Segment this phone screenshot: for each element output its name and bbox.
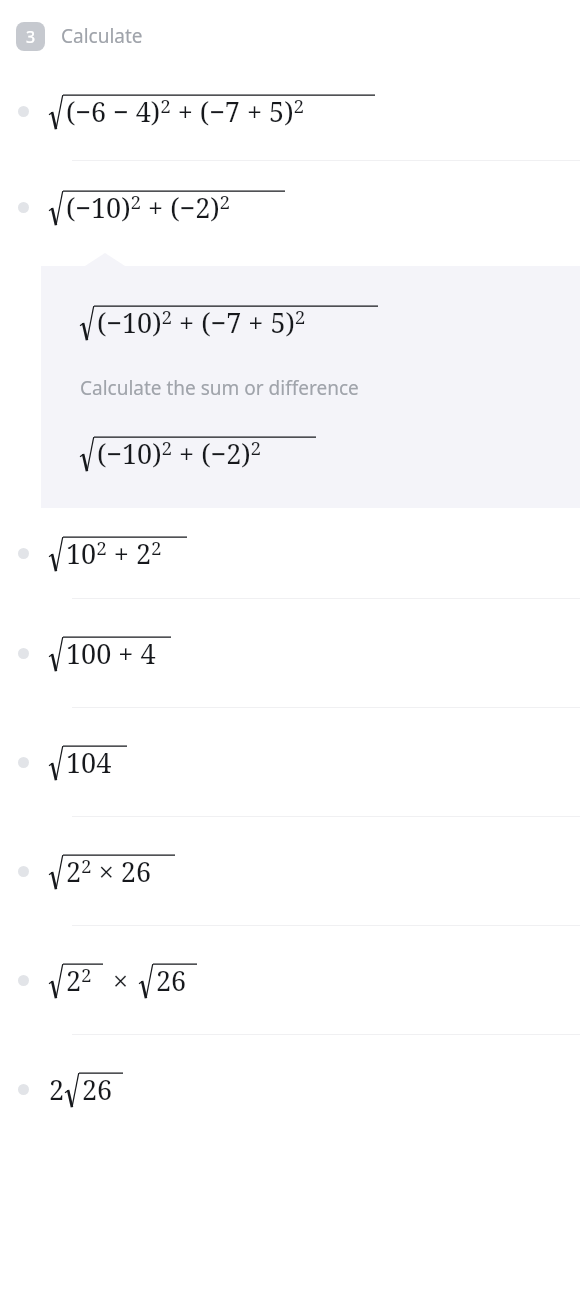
staticText: 22 <box>66 962 92 999</box>
staticText: 104 <box>66 744 112 781</box>
staticText: Calculate <box>61 23 143 49</box>
staticText: 2 <box>49 1071 65 1108</box>
button[interactable]: 3 <box>0 0 580 72</box>
staticText: Calculate the sum or difference <box>80 375 359 401</box>
button[interactable]: (−10)2 + (−2)2 <box>0 161 580 253</box>
staticText: 26 <box>82 1071 113 1108</box>
staticText: (−10)2 + (−2)2 <box>97 435 262 472</box>
button[interactable]: 22 × 26 <box>0 817 580 925</box>
staticText: 22 × 26 <box>66 853 151 890</box>
button[interactable]: 102 + 22 <box>0 508 580 598</box>
button[interactable]: (−6 − 4)2 + (−7 + 5)2 <box>0 72 580 150</box>
staticText: (−10)2 + (−7 + 5)2 <box>97 304 306 341</box>
button[interactable]: 22 <box>0 926 580 1034</box>
staticText: (−6 − 4)2 + (−7 + 5)2 <box>66 93 305 130</box>
button[interactable]: 100 + 4 <box>0 599 580 707</box>
staticText: × <box>113 962 129 999</box>
staticText: 100 + 4 <box>66 635 156 672</box>
button[interactable]: (−10)2 + (−7 + 5)2 <box>41 266 580 508</box>
staticText: 102 + 22 <box>66 535 162 572</box>
staticText: (−10)2 + (−2)2 <box>66 189 231 226</box>
staticText: 26 <box>156 962 187 999</box>
button[interactable]: 2 <box>0 1035 580 1143</box>
button[interactable]: 104 <box>0 708 580 816</box>
staticText: 3 <box>26 26 36 48</box>
